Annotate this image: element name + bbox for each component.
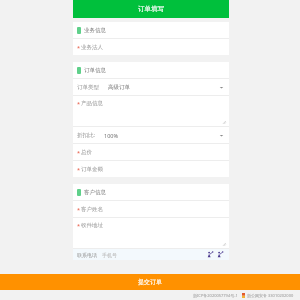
- staticText: 订单信息: [84, 67, 106, 74]
- button[interactable]: 提交订单: [0, 274, 300, 290]
- staticText: *: [77, 166, 81, 173]
- staticText: *: [77, 44, 81, 51]
- other: 联系人: [207, 251, 214, 258]
- button[interactable]: *: [73, 201, 229, 217]
- button[interactable]: *: [73, 96, 229, 126]
- button[interactable]: *: [73, 218, 229, 248]
- staticText: 订单金额: [81, 166, 103, 173]
- staticText: 产品信息: [81, 100, 103, 107]
- staticText: 联系电话: [77, 252, 97, 258]
- staticText: 客户信息: [84, 189, 106, 196]
- staticText: 订单类型: [77, 84, 99, 91]
- button[interactable]: 订单填写: [73, 0, 229, 18]
- other: 通讯录: [217, 251, 224, 258]
- staticText: 高级订单: [108, 84, 130, 91]
- staticText: 提交订单: [138, 278, 162, 286]
- button[interactable]: *: [73, 161, 229, 177]
- button[interactable]: *: [73, 39, 229, 55]
- staticText: 订单填写: [138, 5, 164, 13]
- button[interactable]: *: [73, 144, 229, 160]
- staticText: *: [77, 149, 81, 156]
- staticText: *: [77, 100, 81, 107]
- staticText: *: [77, 206, 81, 213]
- staticText: 收件地址: [81, 222, 103, 229]
- button[interactable]: 折扣比:: [73, 127, 229, 143]
- staticText: 客户姓名: [81, 206, 103, 213]
- staticText: 总价: [81, 149, 92, 156]
- staticText: 浙公网安备 33010202000: [247, 293, 294, 298]
- staticText: 浙ICP备2020057794号-1: [193, 293, 238, 298]
- staticText: 100%: [104, 132, 119, 139]
- staticText: 手机号: [102, 252, 117, 258]
- button[interactable]: 订单类型: [73, 79, 229, 95]
- button[interactable]: 联系电话: [73, 249, 229, 260]
- staticText: 业务信息: [84, 27, 106, 34]
- staticText: *: [77, 222, 81, 229]
- staticText: 业务法人: [81, 44, 103, 51]
- staticText: 折扣比:: [77, 131, 95, 139]
